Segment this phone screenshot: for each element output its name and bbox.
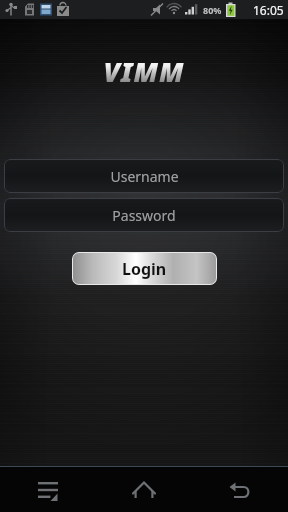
staticText: 16:05 [253, 2, 284, 18]
staticText: 80% [203, 4, 222, 16]
button[interactable]: Menu [0, 467, 96, 512]
button[interactable]: Login [72, 252, 217, 285]
staticText: VIMM [103, 53, 185, 90]
button[interactable]: Back [192, 467, 288, 512]
button[interactable]: Password [4, 198, 284, 232]
staticText: Login [122, 258, 167, 280]
button[interactable]: Home [96, 467, 192, 512]
staticText: Password [112, 206, 176, 225]
staticText: Username [110, 167, 179, 186]
button[interactable]: Username [4, 159, 284, 193]
